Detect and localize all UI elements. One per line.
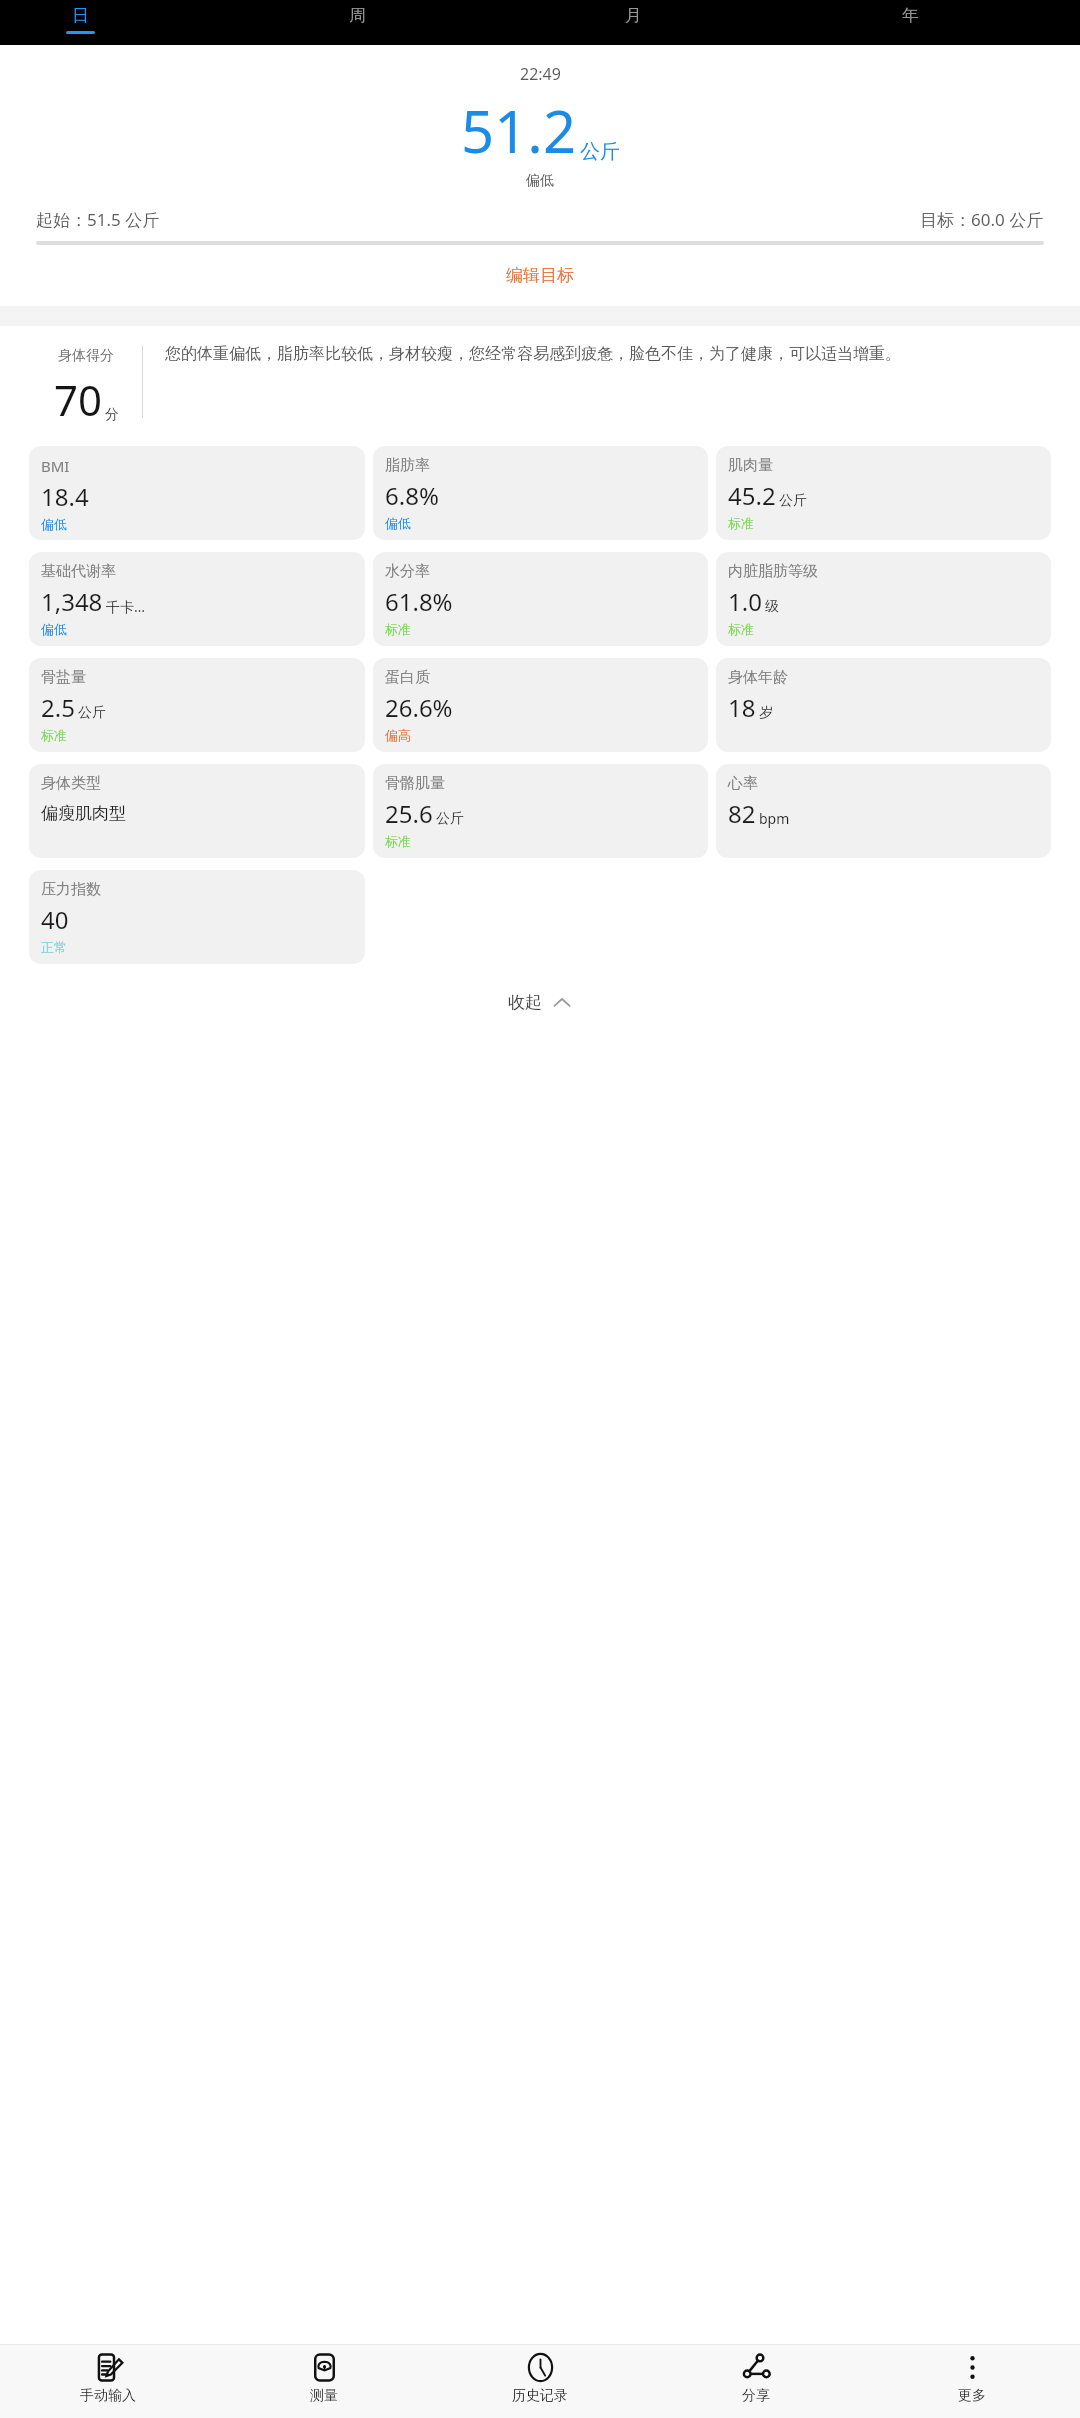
- staticText: 月: [625, 5, 642, 26]
- staticText: 公斤: [436, 810, 464, 828]
- staticText: 公斤: [580, 139, 620, 164]
- staticText: 脂肪率: [385, 456, 430, 475]
- staticText: 1.0: [728, 585, 762, 618]
- staticText: 您的体重偏低，脂肪率比较低，身材较瘦，您经常容易感到疲惫，脸色不佳，为了健康，可…: [165, 344, 901, 364]
- staticText: 26.6%: [385, 691, 453, 724]
- staticText: 61.8%: [385, 585, 453, 618]
- staticText: 目标：60.0 公斤: [920, 208, 1044, 231]
- staticText: 测量: [310, 2387, 338, 2405]
- staticText: 蛋白质: [385, 668, 430, 687]
- staticText: 更多: [958, 2387, 986, 2405]
- staticText: 内脏脂肪等级: [728, 562, 818, 581]
- staticText: 骨骼肌量: [385, 774, 445, 793]
- staticText: BMI: [41, 456, 70, 476]
- staticText: 水分率: [385, 562, 430, 581]
- staticText: 骨盐量: [41, 668, 86, 687]
- staticText: 心率: [728, 774, 758, 793]
- staticText: 编辑目标: [506, 265, 574, 286]
- button[interactable]: 肌肉量: [716, 446, 1051, 540]
- staticText: 18.4: [41, 480, 89, 513]
- button[interactable]: 周: [327, 0, 387, 34]
- staticText: 40: [41, 903, 69, 936]
- staticText: 标准: [385, 833, 411, 849]
- button[interactable]: 分享: [648, 2345, 864, 2418]
- staticText: 偏低: [526, 172, 554, 190]
- staticText: 公斤: [78, 704, 106, 722]
- staticText: 偏高: [385, 727, 411, 743]
- staticText: 身体得分: [58, 347, 114, 365]
- staticText: 公斤: [779, 492, 807, 510]
- staticText: 偏低: [41, 516, 67, 532]
- staticText: 标准: [728, 621, 754, 637]
- button[interactable]: 内脏脂肪等级: [716, 552, 1051, 646]
- button[interactable]: 骨骼肌量: [373, 764, 708, 858]
- button[interactable]: 脂肪率: [373, 446, 708, 540]
- staticText: 标准: [41, 727, 67, 743]
- staticText: 身体类型: [41, 774, 101, 793]
- staticText: bpm: [759, 809, 790, 828]
- staticText: 22:49: [520, 63, 561, 85]
- staticText: 偏低: [41, 621, 67, 637]
- staticText: 6.8%: [385, 479, 439, 512]
- staticText: 级: [765, 598, 779, 616]
- button[interactable]: 历史记录: [432, 2345, 648, 2418]
- button[interactable]: 年: [880, 0, 940, 34]
- staticText: 标准: [385, 621, 411, 637]
- button[interactable]: 测量: [216, 2345, 432, 2418]
- staticText: 手动输入: [80, 2387, 136, 2405]
- button[interactable]: 压力指数: [29, 870, 365, 964]
- staticText: 日: [72, 5, 89, 26]
- button[interactable]: 基础代谢率: [29, 552, 365, 646]
- staticText: 年: [902, 5, 919, 26]
- staticText: 70: [54, 371, 103, 428]
- button[interactable]: 月: [603, 0, 663, 34]
- staticText: 分: [105, 406, 119, 424]
- other: Collapse: [552, 993, 572, 1013]
- staticText: 2.5: [41, 691, 75, 724]
- staticText: 岁: [759, 704, 773, 722]
- staticText: 起始：51.5 公斤: [36, 208, 160, 231]
- staticText: 82: [728, 797, 756, 830]
- staticText: 基础代谢率: [41, 562, 116, 581]
- staticText: 周: [349, 5, 366, 26]
- staticText: 千卡…: [106, 597, 146, 616]
- button[interactable]: 收起: [492, 984, 588, 1021]
- staticText: 1,348: [41, 585, 103, 618]
- staticText: 历史记录: [512, 2387, 568, 2405]
- button[interactable]: 蛋白质: [373, 658, 708, 752]
- staticText: 身体年龄: [728, 668, 788, 687]
- staticText: 偏低: [385, 515, 411, 531]
- staticText: 正常: [41, 939, 67, 955]
- button[interactable]: 手动输入: [0, 2345, 216, 2418]
- button[interactable]: 心率: [716, 764, 1051, 858]
- button[interactable]: 编辑目标: [492, 261, 588, 290]
- button[interactable]: BMI: [29, 446, 365, 540]
- staticText: 压力指数: [41, 880, 101, 899]
- button[interactable]: 日: [50, 0, 110, 34]
- staticText: 51.2: [461, 91, 577, 170]
- button[interactable]: 更多: [864, 2345, 1080, 2418]
- staticText: 18: [728, 691, 756, 724]
- staticText: 标准: [728, 515, 754, 531]
- staticText: 肌肉量: [728, 456, 773, 475]
- button[interactable]: 骨盐量: [29, 658, 365, 752]
- button[interactable]: 身体类型: [29, 764, 365, 858]
- staticText: 分享: [742, 2387, 770, 2405]
- staticText: 25.6: [385, 797, 433, 830]
- button[interactable]: 身体年龄: [716, 658, 1051, 752]
- staticText: 45.2: [728, 479, 776, 512]
- button[interactable]: 水分率: [373, 552, 708, 646]
- staticText: 收起: [508, 992, 542, 1013]
- staticText: 偏瘦肌肉型: [41, 803, 126, 824]
